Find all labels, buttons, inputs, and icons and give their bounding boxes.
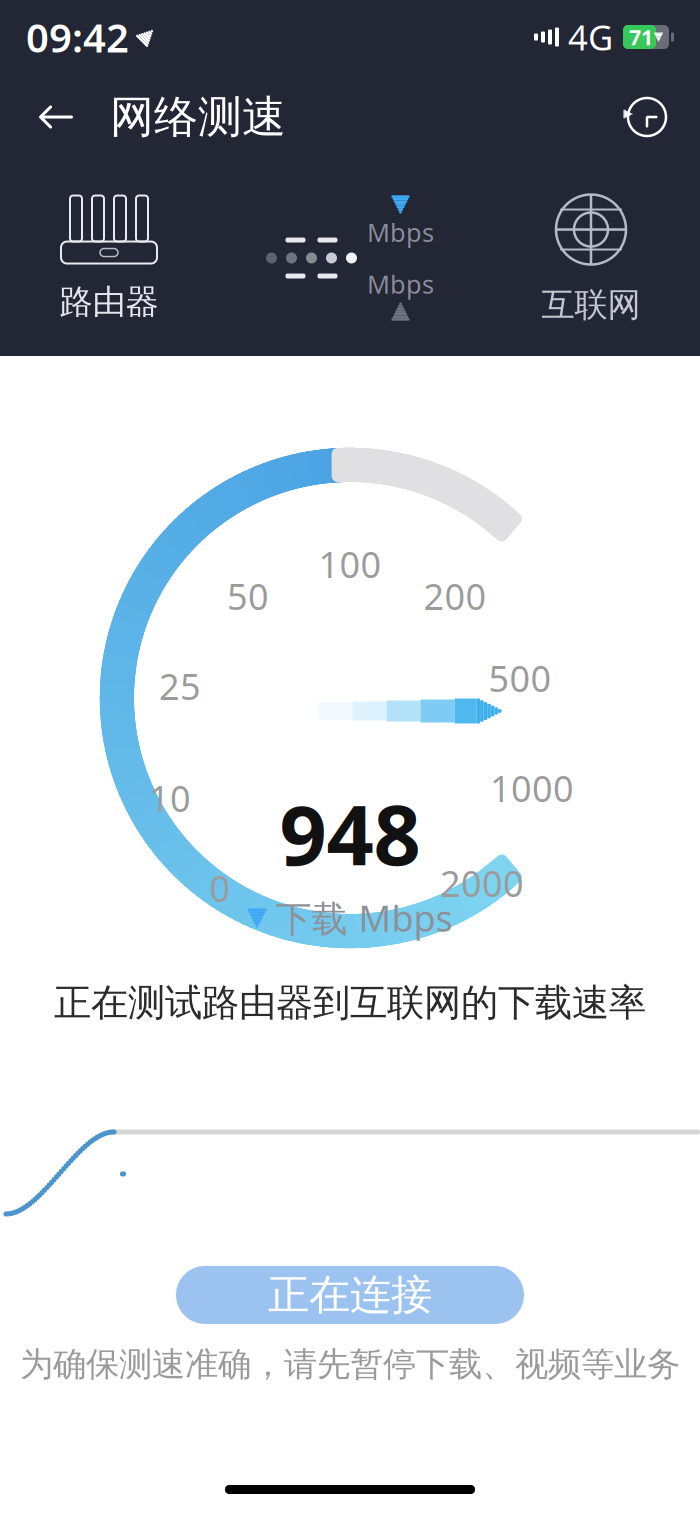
staticText: 路由器 <box>59 281 158 322</box>
staticText: 1000 <box>490 764 574 812</box>
button[interactable]: 正在连接 <box>176 1266 524 1324</box>
button[interactable]: History <box>618 88 676 146</box>
staticText: 下载 Mbps <box>275 894 452 942</box>
staticText: 网络测速 <box>110 90 286 144</box>
button[interactable]: Back <box>24 90 88 144</box>
staticText: 09:42 <box>26 10 129 63</box>
staticText: 为确保测速准确，请先暂停下载、视频等业务 <box>20 1344 680 1385</box>
staticText: 正在连接 <box>268 1270 432 1320</box>
staticText: Mbps <box>367 215 434 249</box>
staticText: Mbps <box>367 267 434 301</box>
staticText: 0 <box>209 864 230 912</box>
staticText: 948 <box>279 778 420 888</box>
staticText: 2000 <box>440 859 524 907</box>
staticText: 71 <box>629 23 653 51</box>
staticText: 500 <box>488 654 551 702</box>
staticText: 25 <box>159 662 201 710</box>
staticText: 10 <box>149 774 191 822</box>
staticText: 正在测试路由器到互联网的下载速率 <box>54 980 646 1026</box>
staticText: 100 <box>318 540 381 588</box>
staticText: 互联网 <box>541 284 640 325</box>
staticText: 50 <box>227 572 269 620</box>
staticText: 4G <box>568 14 613 60</box>
staticText: 200 <box>423 572 486 620</box>
